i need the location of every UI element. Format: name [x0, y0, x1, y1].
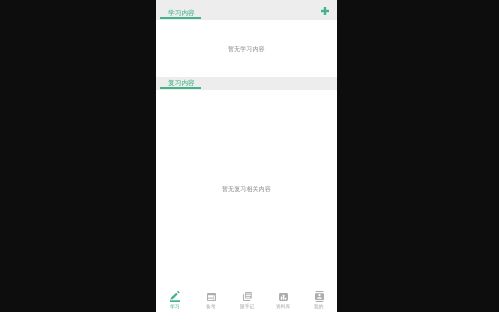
button[interactable]: Add [316, 2, 334, 20]
staticText: 随手记 [240, 303, 255, 309]
staticText: 暂无复习相关内容 [222, 185, 271, 193]
button[interactable]: Profile [301, 288, 337, 312]
button[interactable]: Exam [193, 288, 229, 312]
staticText: 我的 [314, 303, 324, 309]
staticText: 学习内容 [168, 9, 195, 17]
button[interactable]: Study [156, 288, 193, 312]
staticText: 暂无学习内容 [228, 45, 265, 53]
button[interactable]: Notes [229, 288, 265, 312]
staticText: 学习 [170, 303, 180, 309]
staticText: 备考 [206, 303, 216, 309]
staticText: 资料库 [276, 303, 291, 309]
staticText: 复习内容 [168, 79, 195, 87]
button[interactable]: Library [265, 288, 301, 312]
